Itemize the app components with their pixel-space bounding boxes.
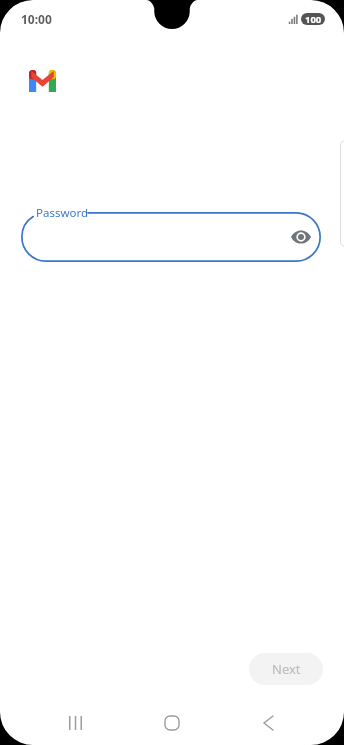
staticText: 10:00	[21, 11, 52, 27]
staticText: Next	[272, 660, 301, 678]
staticText: 100	[305, 13, 322, 25]
button[interactable]: Recents	[57, 705, 93, 741]
button[interactable]: Back	[250, 705, 286, 741]
button[interactable]: Next	[249, 653, 323, 685]
staticText: Password	[36, 205, 89, 221]
button[interactable]: Home	[154, 705, 190, 741]
button[interactable]: Show password	[287, 223, 315, 251]
